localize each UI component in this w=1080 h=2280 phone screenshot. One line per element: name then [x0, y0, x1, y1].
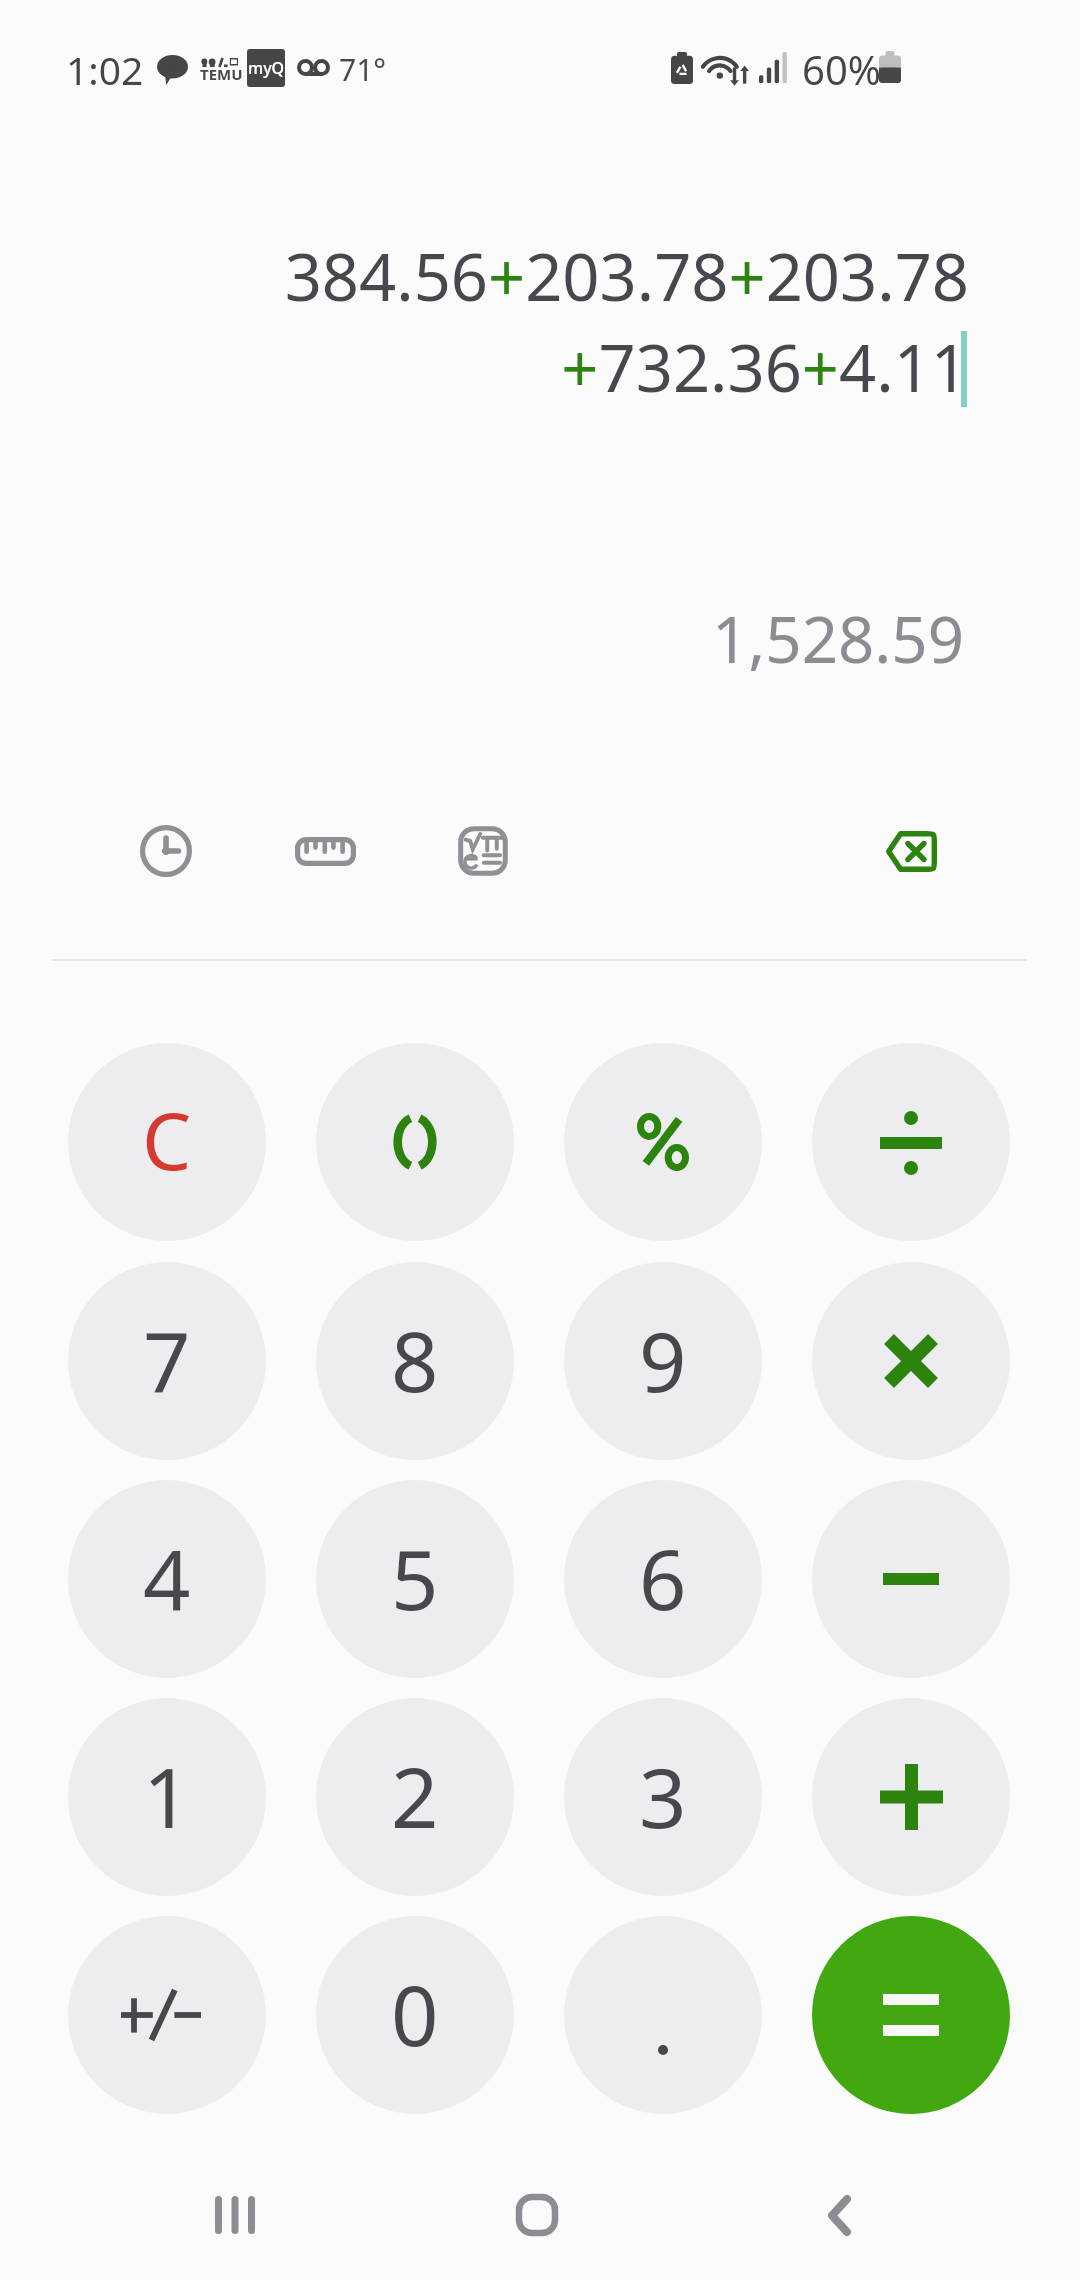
button[interactable]: Backspace	[861, 801, 961, 901]
button[interactable]: Divide	[812, 1043, 1010, 1241]
button[interactable]: Scientific calculator	[433, 801, 533, 901]
staticText: 60%	[802, 42, 881, 96]
staticText: 0	[391, 1957, 439, 2070]
staticText: TEMU	[200, 64, 243, 84]
staticText: 7	[143, 1303, 191, 1416]
button[interactable]: Multiply	[812, 1262, 1010, 1460]
button[interactable]: Recent apps	[175, 2180, 295, 2250]
staticText: 3	[639, 1739, 687, 1852]
button[interactable]: Plus minus	[68, 1916, 266, 2114]
staticText: +732.36+4.11	[0, 323, 968, 412]
button[interactable]: 9	[564, 1262, 762, 1460]
button[interactable]: Decimal point	[564, 1916, 762, 2114]
button[interactable]: Equals	[812, 1916, 1010, 2114]
staticText: 6	[639, 1521, 687, 1634]
staticText: 2	[391, 1739, 439, 1852]
button[interactable]: 1	[68, 1698, 266, 1896]
button[interactable]: 2	[316, 1698, 514, 1896]
staticText: 384.56+203.78+203.78	[0, 232, 969, 321]
staticText: C	[142, 1087, 192, 1193]
button[interactable]: Clear	[68, 1043, 266, 1241]
button[interactable]: 6	[564, 1480, 762, 1678]
button[interactable]: 8	[316, 1262, 514, 1460]
button[interactable]: 0	[316, 1916, 514, 2114]
button[interactable]: 7	[68, 1262, 266, 1460]
button[interactable]: 3	[564, 1698, 762, 1896]
staticText: 4	[143, 1521, 191, 1634]
staticText: 1:02	[66, 43, 144, 96]
button[interactable]: Unit converter	[275, 801, 375, 901]
button[interactable]: 4	[68, 1480, 266, 1678]
staticText: 8	[391, 1303, 439, 1416]
button[interactable]: History	[116, 801, 216, 901]
staticText: 5	[391, 1521, 439, 1634]
staticText: 9	[639, 1303, 687, 1416]
button[interactable]: Home	[477, 2180, 597, 2250]
staticText: myQ	[248, 57, 285, 79]
button[interactable]: Back	[779, 2180, 899, 2250]
staticText: 1	[143, 1739, 191, 1852]
button[interactable]: 5	[316, 1480, 514, 1678]
staticText: 71°	[339, 49, 387, 90]
staticText: 1,528.59	[0, 595, 964, 681]
button[interactable]: Minus	[812, 1480, 1010, 1678]
button[interactable]: Plus	[812, 1698, 1010, 1896]
button[interactable]: Parentheses	[316, 1043, 514, 1241]
button[interactable]: Percent	[564, 1043, 762, 1241]
